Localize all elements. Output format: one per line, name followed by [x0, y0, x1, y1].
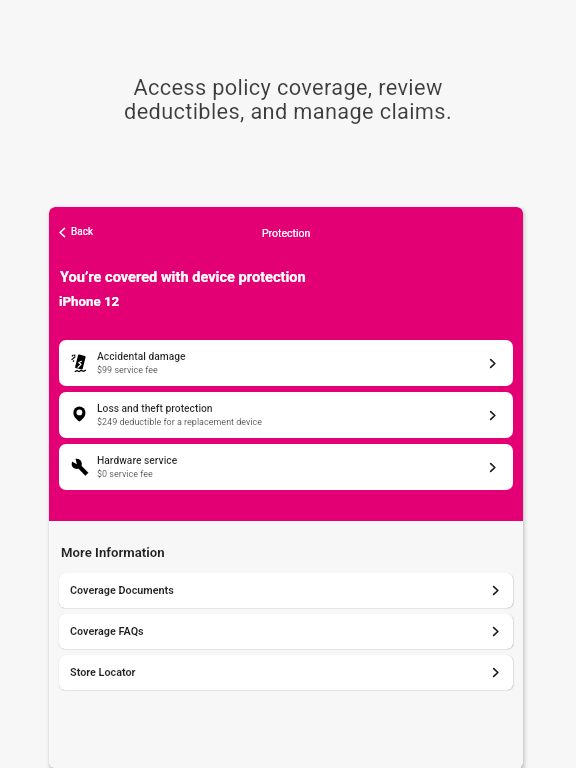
staticText: Protection: [262, 227, 311, 239]
button[interactable]: Back: [49, 219, 103, 245]
staticText: $99 service fee: [97, 365, 158, 376]
staticText: Loss and theft protection: [97, 402, 213, 414]
button[interactable]: Store Locator: [59, 655, 513, 690]
staticText: Store Locator: [70, 666, 489, 679]
button[interactable]: Coverage Documents: [59, 573, 513, 608]
staticText: $249 deductible for a replacement device: [97, 417, 263, 428]
button[interactable]: Coverage FAQs: [59, 614, 513, 649]
staticText: Coverage FAQs: [70, 625, 489, 638]
button[interactable]: Hardware service: [59, 444, 513, 490]
staticText: Coverage Documents: [70, 584, 489, 597]
staticText: Back: [71, 226, 93, 238]
staticText: Access policy coverage, review deductibl…: [0, 75, 576, 125]
staticText: You’re covered with device protection: [60, 268, 306, 285]
staticText: Hardware service: [97, 454, 178, 466]
staticText: Accidental damage: [97, 350, 186, 362]
button[interactable]: Loss and theft protection: [59, 392, 513, 438]
staticText: More Information: [61, 545, 165, 560]
staticText: iPhone 12: [59, 294, 120, 310]
staticText: $0 service fee: [97, 469, 153, 480]
button[interactable]: Accidental damage: [59, 340, 513, 386]
